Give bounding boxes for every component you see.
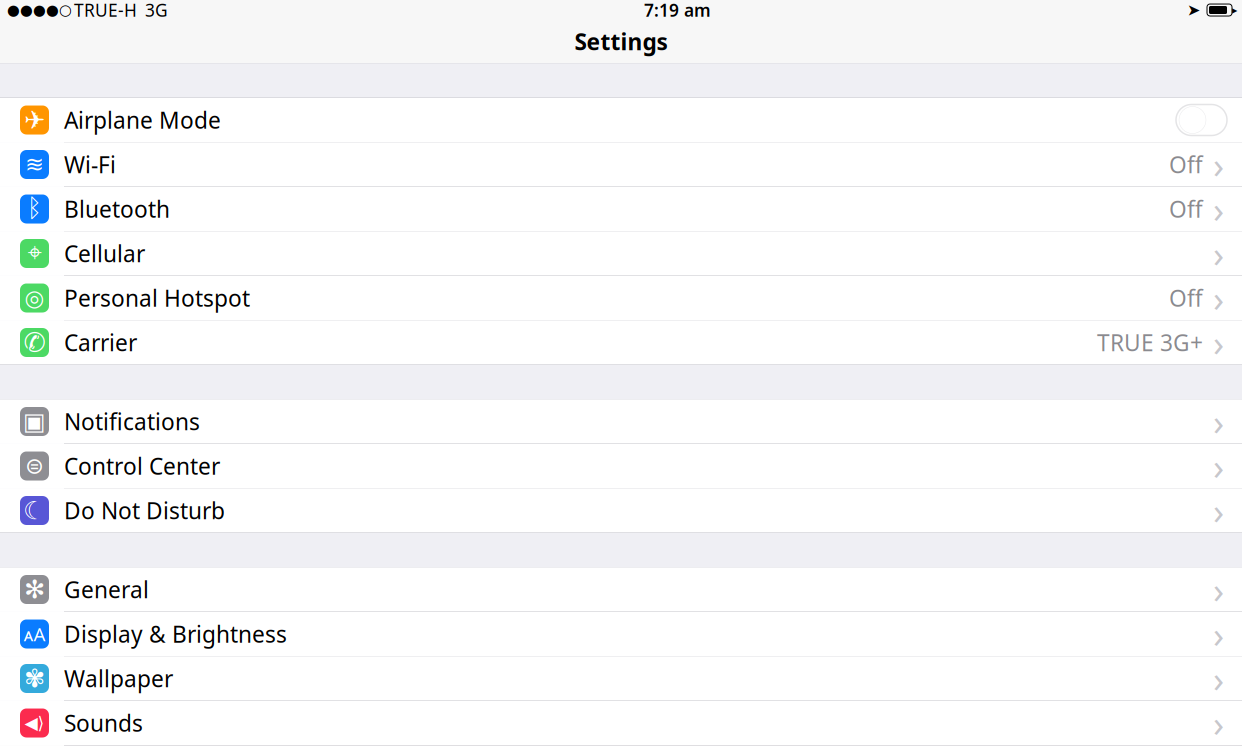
staticText: ›	[1213, 230, 1224, 277]
staticText: Settings	[574, 26, 667, 56]
staticText: Do Not Disturb	[64, 495, 225, 525]
button[interactable]: ≋	[0, 142, 1242, 186]
button[interactable]: ✆	[0, 320, 1242, 364]
staticText: Control Center	[64, 451, 220, 481]
staticText: Off	[1169, 194, 1203, 224]
staticText: ⊜	[25, 453, 44, 479]
staticText: ✆	[23, 327, 45, 358]
staticText: Personal Hotspot	[64, 283, 250, 313]
staticText: Notifications	[64, 406, 200, 436]
staticText: ›	[1213, 610, 1224, 658]
staticText: ›	[1213, 699, 1224, 746]
staticText: ◎	[24, 285, 44, 311]
staticText: ≋	[25, 152, 44, 177]
staticText: ᛒ	[27, 197, 42, 221]
staticText: Cellular	[64, 238, 145, 268]
staticText: ᴀA	[23, 622, 45, 646]
staticText: Wi-Fi	[64, 149, 116, 179]
button[interactable]: ✾	[0, 656, 1242, 700]
staticText: ➤	[1187, 1, 1200, 19]
staticText: ✾	[24, 664, 45, 693]
staticText: Wallpaper	[64, 663, 173, 693]
button[interactable]: ☾	[0, 488, 1242, 532]
staticText: Off	[1169, 283, 1203, 313]
button[interactable]: ᛒ	[0, 187, 1242, 231]
staticText: ›	[1213, 185, 1224, 233]
button[interactable]: ◎	[0, 276, 1242, 320]
button[interactable]: ⌖	[0, 231, 1242, 275]
staticText: ›	[1213, 655, 1224, 702]
staticText: ◀⟩	[24, 713, 44, 733]
staticText: General	[64, 574, 149, 604]
staticText: TRUE 3G+	[1097, 327, 1203, 357]
staticText: Airplane Mode	[64, 105, 221, 135]
staticText: Bluetooth	[64, 194, 170, 224]
staticText: ›	[1213, 442, 1224, 490]
staticText: 3G	[145, 0, 168, 21]
staticText: ›	[1213, 141, 1224, 188]
staticText: ▸	[1232, 4, 1237, 16]
button[interactable]: ▣	[0, 399, 1242, 443]
staticText: TRUE-H	[74, 0, 137, 21]
button[interactable]: ᴀA	[0, 612, 1242, 656]
staticText: ›	[1213, 398, 1224, 445]
button[interactable]: ✈	[0, 98, 1242, 142]
button[interactable]: ◀⟩	[0, 701, 1242, 745]
staticText: ⌖	[27, 241, 41, 266]
staticText: ›	[1213, 487, 1224, 534]
staticText: ›	[1213, 319, 1224, 366]
staticText: ▣	[23, 408, 46, 435]
staticText: ●●●●○	[7, 2, 72, 18]
staticText: ›	[1213, 274, 1224, 322]
staticText: ✈	[24, 106, 45, 134]
staticText: Sounds	[64, 708, 143, 738]
button[interactable]: ⊜	[0, 444, 1242, 488]
staticText: Off	[1169, 149, 1203, 179]
staticText: 7:19 am	[644, 0, 711, 21]
staticText: Display & Brightness	[64, 619, 287, 649]
staticText: ☾	[23, 496, 46, 525]
staticText: ✻	[24, 575, 45, 604]
staticText: ›	[1213, 566, 1224, 613]
staticText: Carrier	[64, 327, 137, 357]
button[interactable]: ✻	[0, 567, 1242, 611]
